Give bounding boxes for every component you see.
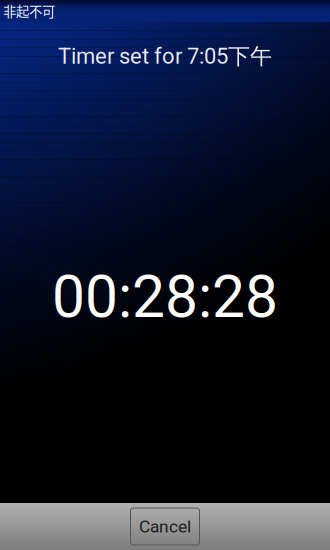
- staticText: 00:28:28: [52, 263, 278, 331]
- staticText: Timer set for 7:05下午: [58, 43, 272, 70]
- button[interactable]: Cancel: [130, 508, 199, 545]
- staticText: Cancel: [139, 516, 191, 537]
- staticText: 非起不可: [3, 1, 55, 21]
